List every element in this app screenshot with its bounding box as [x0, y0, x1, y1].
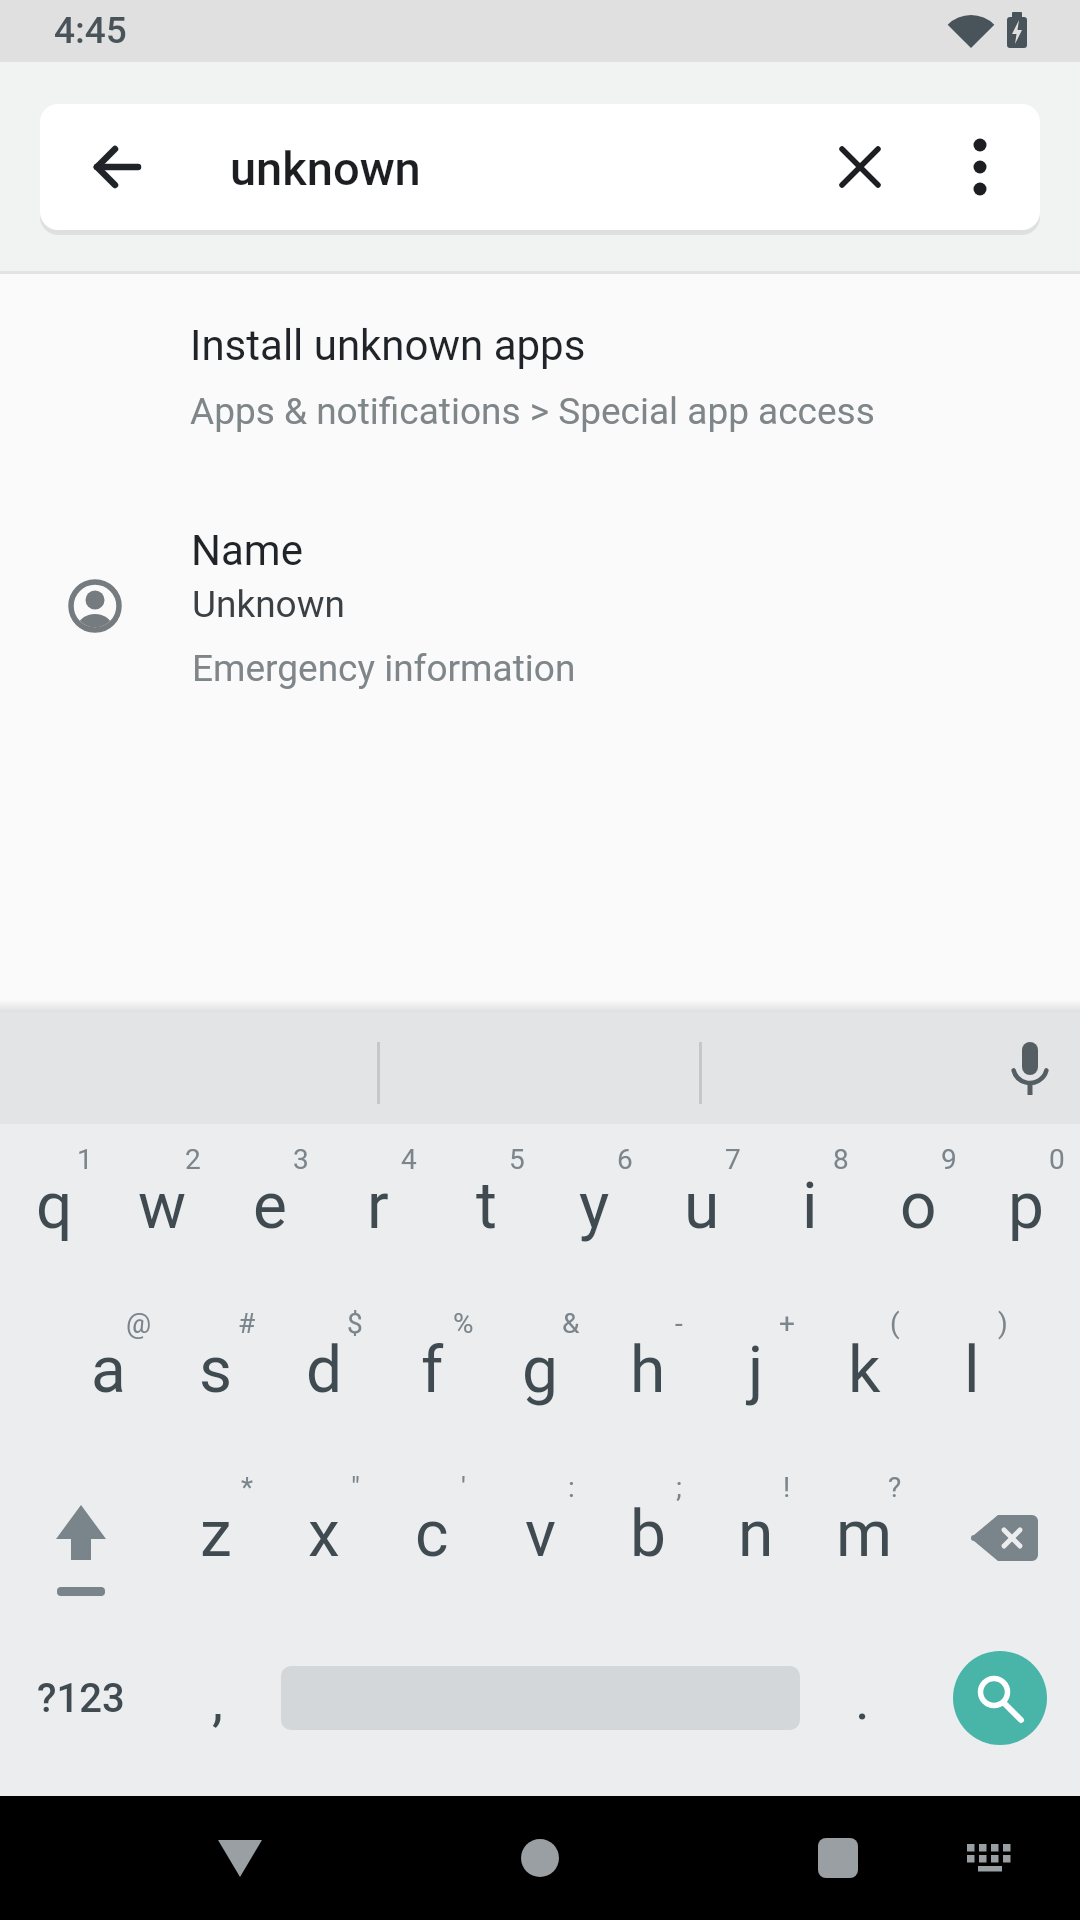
- staticText: x: [308, 1497, 340, 1572]
- button[interactable]: g: [486, 1288, 594, 1452]
- staticText: p: [1008, 1169, 1044, 1244]
- button[interactable]: q: [0, 1124, 108, 1288]
- button[interactable]: e: [216, 1124, 324, 1288]
- staticText: t: [476, 1169, 497, 1244]
- staticText: w: [138, 1169, 187, 1244]
- button[interactable]: j: [702, 1288, 810, 1452]
- staticText: j: [748, 1333, 764, 1408]
- staticText: $: [347, 1307, 363, 1340]
- staticText: v: [525, 1497, 556, 1572]
- button[interactable]: u: [648, 1124, 756, 1288]
- button[interactable]: w: [108, 1124, 216, 1288]
- button[interactable]: x: [270, 1452, 378, 1616]
- staticText: %: [453, 1307, 474, 1340]
- button[interactable]: o: [864, 1124, 972, 1288]
- staticText: n: [738, 1497, 774, 1572]
- staticText: +: [779, 1307, 795, 1340]
- staticText: 7: [725, 1143, 741, 1176]
- staticText: unknown: [230, 141, 421, 196]
- staticText: r: [367, 1169, 389, 1244]
- staticText: ': [461, 1471, 466, 1504]
- staticText: o: [900, 1169, 937, 1244]
- staticText: d: [306, 1333, 343, 1408]
- button[interactable]: m: [810, 1452, 918, 1616]
- button[interactable]: Install unknown apps: [0, 296, 1080, 462]
- staticText: #: [238, 1307, 256, 1340]
- staticText: !: [783, 1471, 791, 1504]
- button[interactable]: t: [432, 1124, 540, 1288]
- button[interactable]: l: [918, 1288, 1026, 1452]
- staticText: @: [126, 1307, 152, 1340]
- staticText: e: [253, 1169, 287, 1244]
- staticText: Emergency information: [192, 647, 576, 690]
- button[interactable]: v: [486, 1452, 594, 1616]
- staticText: 3: [293, 1143, 309, 1176]
- button[interactable]: ?123: [0, 1616, 162, 1780]
- staticText: 4:45: [54, 9, 127, 52]
- staticText: Apps & notifications > Special app acces…: [190, 390, 875, 433]
- staticText: b: [630, 1497, 666, 1572]
- button[interactable]: p: [972, 1124, 1080, 1288]
- button[interactable]: s: [162, 1288, 270, 1452]
- staticText: 0: [1049, 1143, 1065, 1176]
- staticText: ,: [212, 1668, 224, 1734]
- staticText: -: [675, 1307, 683, 1340]
- button[interactable]: b: [594, 1452, 702, 1616]
- staticText: s: [199, 1333, 233, 1408]
- staticText: (: [890, 1307, 900, 1340]
- button[interactable]: r: [324, 1124, 432, 1288]
- staticText: ): [998, 1307, 1008, 1340]
- staticText: Name: [191, 526, 303, 575]
- button[interactable]: [930, 1806, 1050, 1910]
- staticText: l: [964, 1333, 980, 1408]
- staticText: .: [855, 1667, 870, 1733]
- button[interactable]: [918, 1452, 1080, 1616]
- button[interactable]: a: [54, 1288, 162, 1452]
- button[interactable]: i: [756, 1124, 864, 1288]
- staticText: 5: [509, 1143, 525, 1176]
- button[interactable]: [0, 1452, 162, 1616]
- staticText: g: [522, 1333, 558, 1408]
- staticText: m: [836, 1497, 893, 1572]
- button[interactable]: y: [540, 1124, 648, 1288]
- staticText: h: [630, 1333, 666, 1408]
- staticText: ": [351, 1471, 360, 1504]
- staticText: 2: [185, 1143, 201, 1176]
- button[interactable]: n: [702, 1452, 810, 1616]
- button[interactable]: c: [378, 1452, 486, 1616]
- button[interactable]: Name: [0, 505, 1080, 705]
- staticText: ?123: [37, 1675, 125, 1722]
- button[interactable]: [70, 120, 164, 214]
- staticText: k: [848, 1333, 881, 1408]
- staticText: ?: [888, 1471, 902, 1504]
- staticText: *: [241, 1471, 254, 1504]
- button[interactable]: f: [378, 1288, 486, 1452]
- staticText: y: [579, 1169, 610, 1244]
- button[interactable]: h: [594, 1288, 702, 1452]
- staticText: q: [36, 1169, 73, 1244]
- staticText: &: [562, 1307, 580, 1340]
- button[interactable]: z: [162, 1452, 270, 1616]
- staticText: 6: [617, 1143, 633, 1176]
- staticText: :: [568, 1471, 575, 1504]
- button[interactable]: [980, 1020, 1080, 1120]
- staticText: 9: [941, 1143, 957, 1176]
- button[interactable]: [813, 120, 907, 214]
- staticText: Unknown: [192, 583, 345, 626]
- button[interactable]: [920, 1616, 1080, 1780]
- staticText: i: [802, 1169, 818, 1244]
- button[interactable]: [280, 1616, 800, 1780]
- staticText: 1: [77, 1143, 93, 1176]
- button[interactable]: [768, 1806, 908, 1910]
- staticText: u: [684, 1169, 720, 1244]
- staticText: f: [421, 1333, 444, 1408]
- staticText: z: [200, 1497, 232, 1572]
- button[interactable]: [470, 1806, 610, 1910]
- staticText: a: [91, 1333, 126, 1408]
- button[interactable]: [933, 120, 1027, 214]
- staticText: c: [415, 1497, 449, 1572]
- button[interactable]: [170, 1806, 310, 1910]
- button[interactable]: d: [270, 1288, 378, 1452]
- staticText: 8: [833, 1143, 849, 1176]
- button[interactable]: k: [810, 1288, 918, 1452]
